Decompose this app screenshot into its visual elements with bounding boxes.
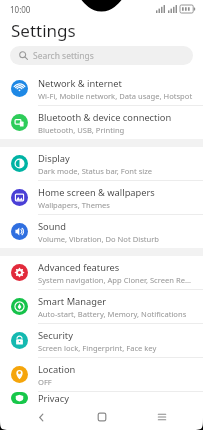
staticText: Screen lock, Fingerprint, Face key: [38, 343, 157, 353]
button[interactable]: Bluetooth & device connection: [0, 106, 203, 139]
staticText: Bluetooth, USB, Printing: [38, 125, 125, 135]
staticText: Dark mode, Status bar, Font size: [38, 166, 153, 176]
staticText: Advanced features: [38, 261, 120, 274]
button[interactable]: Home screen & wallpapers: [0, 181, 203, 214]
staticText: Volume, Vibration, Do Not Disturb: [38, 234, 160, 244]
staticText: Privacy: [38, 392, 70, 404]
button[interactable]: Sound: [0, 215, 203, 248]
button[interactable]: Network & internet: [0, 72, 203, 105]
button[interactable]: Recent apps: [142, 404, 182, 430]
staticText: Auto-start, Battery, Memory, Notificatio…: [38, 309, 187, 319]
staticText: Display: [38, 152, 70, 165]
button[interactable]: Location: [0, 358, 203, 391]
button[interactable]: Home: [82, 404, 122, 430]
staticText: Sound: [38, 220, 66, 233]
staticText: Settings: [11, 19, 76, 42]
button[interactable]: Search settings: [10, 46, 193, 65]
button[interactable]: Privacy: [0, 392, 203, 404]
button[interactable]: Security: [0, 324, 203, 357]
button[interactable]: Display: [0, 147, 203, 180]
staticText: Security: [38, 329, 73, 342]
staticText: Network & internet: [38, 77, 122, 90]
staticText: Search settings: [33, 50, 94, 62]
button[interactable]: Smart Manager: [0, 290, 203, 323]
staticText: Bluetooth & device connection: [38, 111, 172, 124]
staticText: 10:00: [10, 4, 31, 15]
staticText: OFF: [38, 377, 52, 387]
staticText: Location: [38, 363, 76, 376]
staticText: Wallpapers, Themes: [38, 200, 110, 210]
staticText: Home screen & wallpapers: [38, 186, 155, 199]
staticText: Wi-Fi, Mobile network, Data usage, Hotsp…: [38, 91, 193, 101]
staticText: Smart Manager: [38, 295, 107, 308]
staticText: System navigation, App Cloner, Screen Re…: [38, 275, 191, 285]
button[interactable]: Advanced features: [0, 256, 203, 289]
button[interactable]: Back: [21, 404, 61, 430]
